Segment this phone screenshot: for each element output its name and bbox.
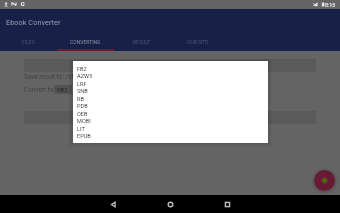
staticText: LRF [77, 81, 87, 88]
staticText: Ebook Converter [6, 18, 61, 27]
button[interactable]: FB2 [57, 85, 68, 94]
staticText: 8:15 [325, 2, 336, 8]
staticText: FB2 [77, 66, 87, 73]
staticText: Save result to: /storage/emulated/0/Conv… [24, 73, 151, 81]
button[interactable]: PDB [73, 102, 268, 110]
button[interactable]: RESULT [114, 36, 170, 51]
staticText: MOBI [77, 118, 91, 125]
button[interactable]: LRF [73, 80, 268, 88]
button[interactable]: CONVERTING [57, 36, 114, 51]
button[interactable]: Home [161, 195, 179, 213]
staticText: CONVERTING [70, 39, 101, 45]
button[interactable]: Back [104, 195, 122, 213]
button[interactable]: SNB [73, 87, 268, 95]
staticText: AZW3 [77, 73, 93, 80]
button[interactable]: LIT [73, 125, 268, 133]
staticText: OEB [77, 111, 88, 118]
staticText: FB2 [57, 86, 68, 93]
staticText: FILES [22, 39, 35, 45]
button[interactable]: AZW3 [73, 72, 268, 80]
staticText: SNB [77, 88, 88, 95]
button[interactable]: RB [73, 95, 268, 103]
button[interactable]: MOBI [73, 117, 268, 125]
button[interactable]: FILES [0, 36, 57, 51]
staticText: OUR SITE [187, 39, 209, 45]
staticText: RB [77, 96, 84, 103]
button[interactable]: OUR SITE [170, 36, 226, 51]
staticText: Convert to [24, 86, 54, 94]
button[interactable]: Recents [218, 195, 236, 213]
staticText: EPUB [77, 133, 91, 140]
button[interactable]: Add file [314, 170, 335, 191]
staticText: PDB [77, 103, 88, 110]
button[interactable]: EPUB [73, 132, 268, 140]
button[interactable]: OEB [73, 110, 268, 118]
button[interactable]: FB2 [73, 65, 268, 73]
staticText: RESULT [133, 39, 151, 45]
staticText: LIT [77, 126, 85, 133]
